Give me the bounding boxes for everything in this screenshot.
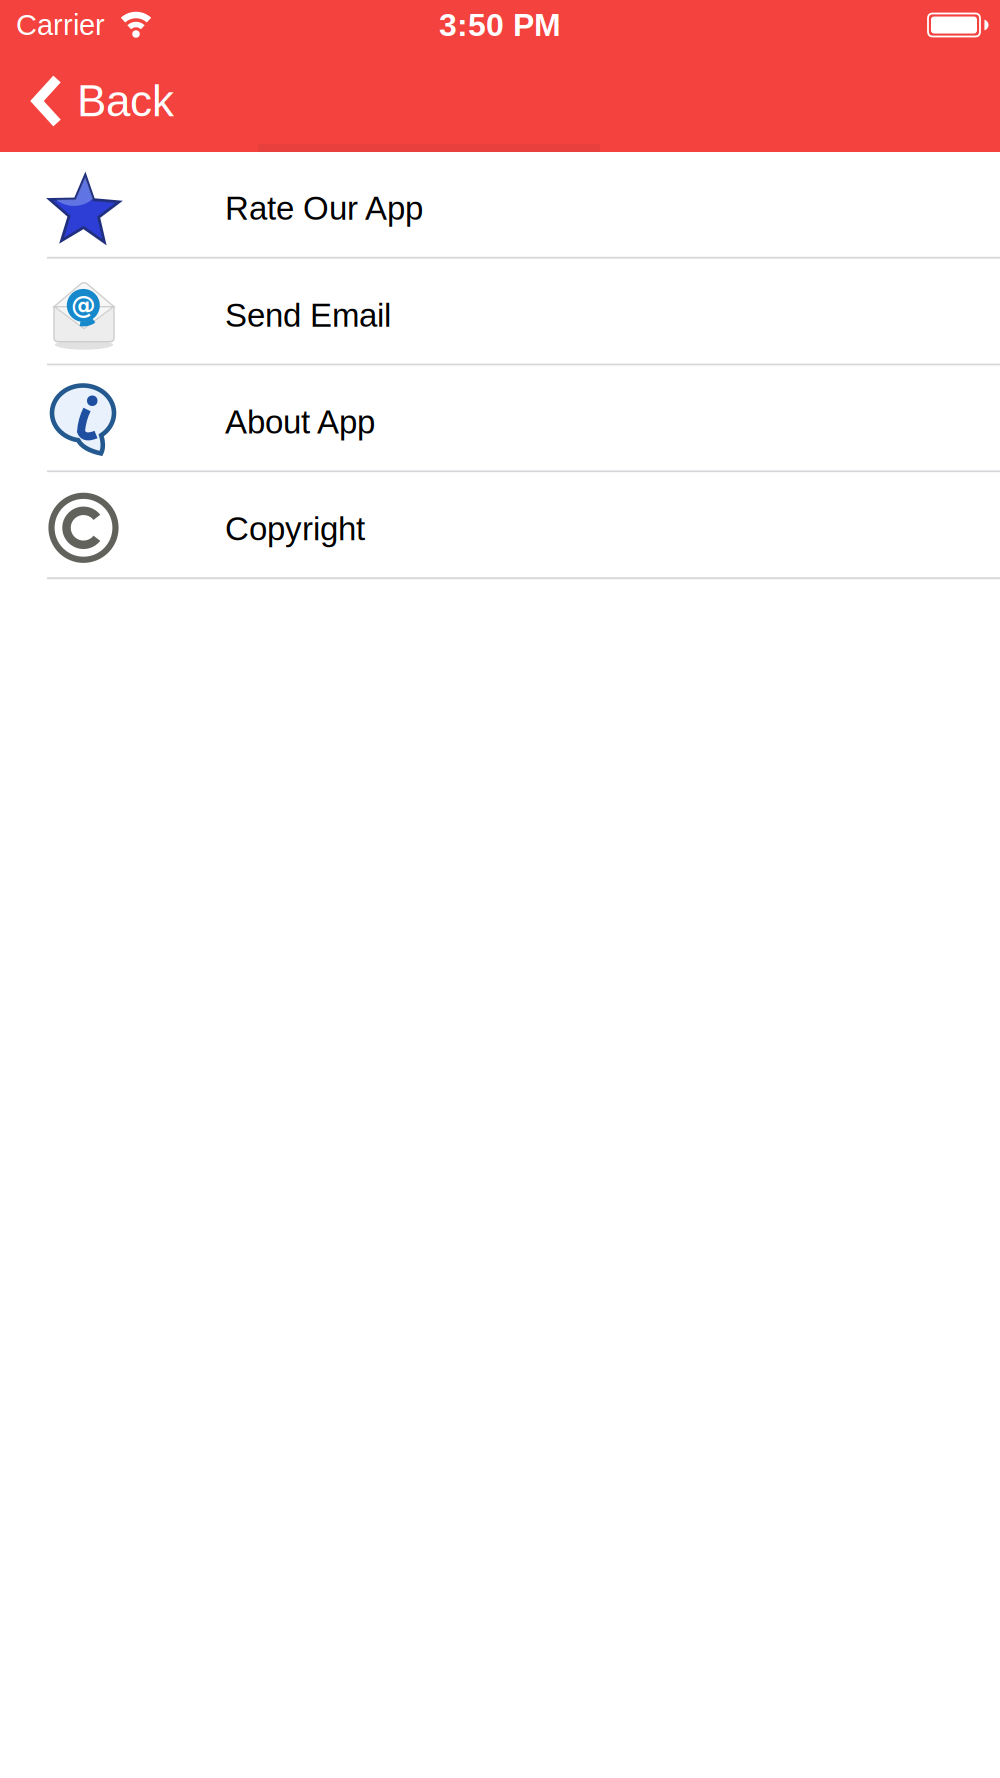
staticText: Copyright: [225, 510, 365, 547]
staticText: About App: [225, 404, 375, 440]
button[interactable]: Copyright: [0, 472, 1000, 579]
staticText: Back: [77, 76, 174, 126]
staticText: Carrier: [16, 9, 105, 41]
staticText: 3:50 PM: [439, 7, 561, 43]
button[interactable]: Back: [0, 76, 174, 126]
button[interactable]: Rate Our App: [0, 152, 1000, 259]
button[interactable]: @: [0, 259, 1000, 366]
staticText: @: [71, 291, 96, 320]
button[interactable]: About App: [0, 366, 1000, 472]
staticText: Send Email: [225, 297, 391, 334]
staticText: Rate Our App: [225, 190, 423, 227]
